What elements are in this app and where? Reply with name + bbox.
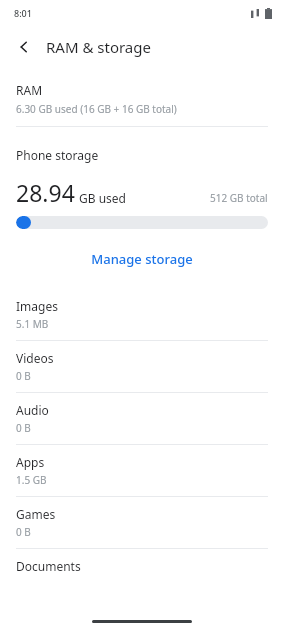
staticText: Apps (16, 454, 45, 470)
staticText: Documents (16, 558, 81, 574)
staticText: 6.30 GB used (16 GB + 16 GB total) (16, 102, 177, 116)
button[interactable]: Apps (0, 445, 284, 496)
staticText: RAM & storage (46, 37, 151, 57)
button[interactable]: Back (8, 31, 40, 63)
button[interactable]: Videos (0, 341, 284, 392)
button[interactable]: RAM (0, 82, 284, 116)
button[interactable]: Audio (0, 393, 284, 444)
button[interactable]: Manage storage (81, 247, 203, 271)
button[interactable]: Games (0, 497, 284, 548)
staticText: 0 B (16, 525, 31, 539)
staticText: RAM (16, 82, 43, 98)
button[interactable]: Images (0, 289, 284, 340)
staticText: GB used (79, 190, 126, 206)
staticText: 0 B (16, 369, 31, 383)
staticText: Games (16, 506, 56, 522)
staticText: Images (16, 298, 58, 314)
staticText: 8:01 (14, 7, 32, 19)
staticText: Phone storage (16, 147, 99, 163)
staticText: Videos (16, 350, 54, 366)
staticText: 28.94 (16, 177, 75, 208)
staticText: Manage storage (91, 250, 193, 268)
staticText: 512 GB total (210, 191, 268, 205)
button[interactable]: Documents (0, 549, 284, 583)
staticText: 5.1 MB (16, 317, 49, 331)
staticText: 1.5 GB (16, 473, 47, 487)
staticText: Audio (16, 402, 49, 418)
staticText: 0 B (16, 421, 31, 435)
